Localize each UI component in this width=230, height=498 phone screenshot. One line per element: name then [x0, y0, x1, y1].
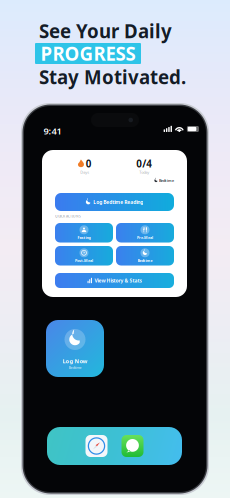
staticText: See Your Daily — [39, 18, 172, 44]
button[interactable]: Pre-Meal — [116, 223, 174, 242]
staticText: Days — [80, 169, 89, 175]
staticText: Post-Meal — [75, 258, 93, 263]
staticText: QUICK ACTIONS — [55, 214, 81, 218]
staticText: View History & Stats — [94, 277, 141, 284]
button[interactable]: Log Bedtime Reading — [55, 193, 174, 211]
staticText: Pre-Meal — [137, 235, 153, 240]
staticText: PROGRESS — [40, 41, 135, 66]
button[interactable]: Fasting — [55, 223, 113, 242]
staticText: Fasting — [77, 235, 90, 240]
button[interactable]: Safari — [85, 435, 107, 457]
staticText: Bedtime — [137, 258, 152, 263]
staticText: Bedtime — [159, 178, 174, 183]
button[interactable]: Log Now — [46, 320, 104, 377]
staticText: Stay Motivated. — [39, 64, 186, 90]
staticText: Log Now — [62, 357, 87, 365]
button[interactable]: Bedtime — [116, 246, 174, 265]
staticText: 0 — [86, 157, 92, 170]
staticText: Today — [139, 169, 149, 175]
staticText: 0/4 — [136, 157, 152, 170]
button[interactable]: Messages — [121, 435, 143, 457]
button[interactable]: Post-Meal — [55, 246, 113, 265]
staticText: 9:41 — [43, 124, 61, 137]
button[interactable]: View History & Stats — [55, 273, 174, 288]
staticText: Bedtime — [68, 365, 81, 370]
staticText: Log Bedtime Reading — [93, 199, 143, 205]
